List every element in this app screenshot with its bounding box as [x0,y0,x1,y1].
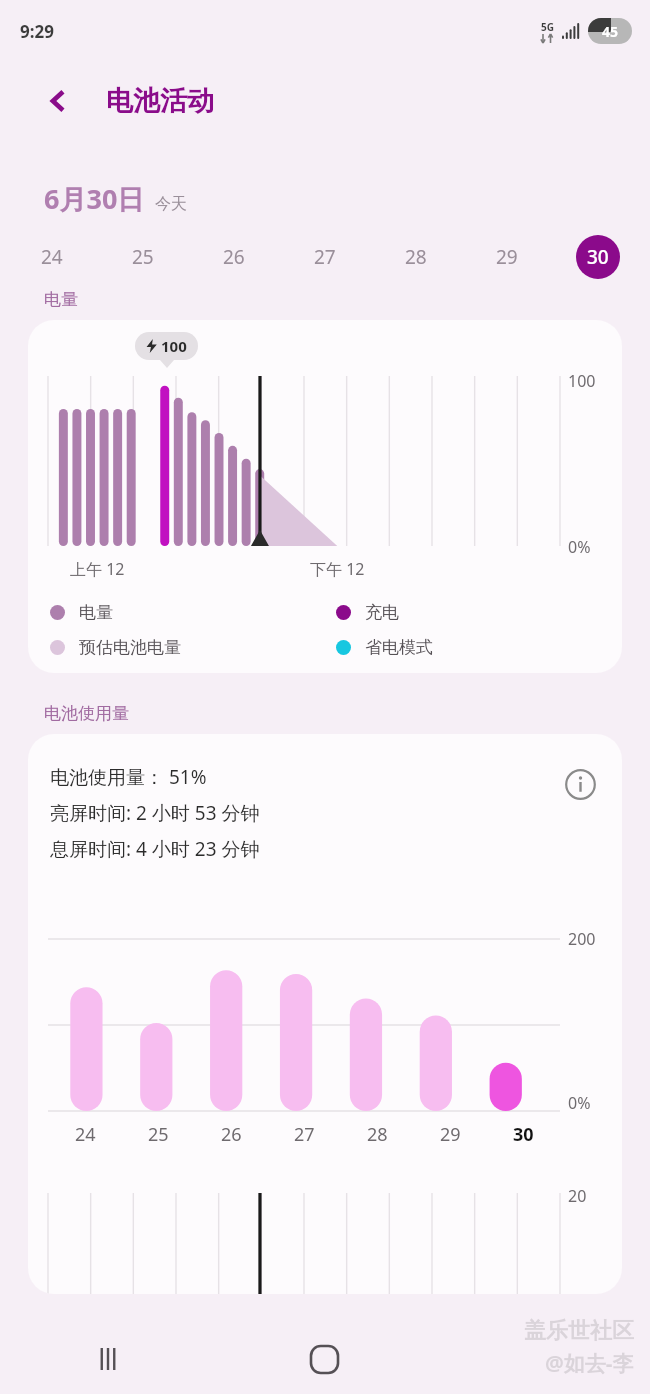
staticText: 息屏时间: 4 小时 23 分钟 [50,836,260,862]
button[interactable]: 27 [303,235,347,279]
button[interactable]: 100 [28,320,622,673]
staticText: 充电 [365,602,399,623]
staticText: 0% [568,536,591,558]
staticText: 24 [75,1122,96,1147]
staticText: 电量 [44,289,78,310]
staticText: 26 [223,244,245,270]
staticText: 30 [587,244,609,270]
staticText: 27 [294,1122,315,1147]
staticText: 24 [41,244,63,270]
button[interactable]: 30 [576,235,620,279]
staticText: 30 [513,1122,534,1147]
staticText: 电量 [79,602,113,623]
staticText: 20 [568,1185,587,1207]
staticText: 25 [148,1122,169,1147]
button[interactable]: 26 [212,235,256,279]
staticText: 200 [568,928,596,950]
button[interactable]: Recents [0,1324,216,1394]
button[interactable]: 25 [121,235,165,279]
staticText: 0% [568,1092,591,1114]
staticText: 45 [602,22,619,41]
staticText: 100 [161,336,187,356]
staticText: 5G [541,20,554,34]
staticText: 电池使用量 [44,703,129,724]
staticText: 预估电池电量 [79,637,181,658]
staticText: 上午 12 [70,558,125,580]
staticText: 28 [367,1122,388,1147]
staticText: 下午 12 [310,558,365,580]
button[interactable]: 电池使用量： 51% [28,734,622,1294]
staticText: @如去-李 [545,1349,634,1378]
staticText: 100 [568,370,596,392]
button[interactable]: Home [216,1324,433,1394]
button[interactable]: 24 [30,235,74,279]
staticText: 电池使用量： 51% [50,764,207,790]
staticText: 亮屏时间: 2 小时 53 分钟 [50,800,260,826]
staticText: 25 [132,244,154,270]
staticText: 29 [440,1122,461,1147]
staticText: 29 [496,244,518,270]
staticText: 盖乐世社区 [524,1317,634,1345]
button[interactable]: 29 [485,235,529,279]
button[interactable]: Back [36,78,82,124]
staticText: 27 [314,244,336,270]
staticText: 26 [221,1122,242,1147]
staticText: 电池活动 [106,84,214,118]
button[interactable]: Info [560,764,600,804]
staticText: 6月30日 [44,180,145,217]
staticText: 28 [405,244,427,270]
staticText: 9:29 [20,20,54,43]
staticText: 省电模式 [365,637,433,658]
button[interactable]: 28 [394,235,438,279]
staticText: 今天 [155,194,187,214]
